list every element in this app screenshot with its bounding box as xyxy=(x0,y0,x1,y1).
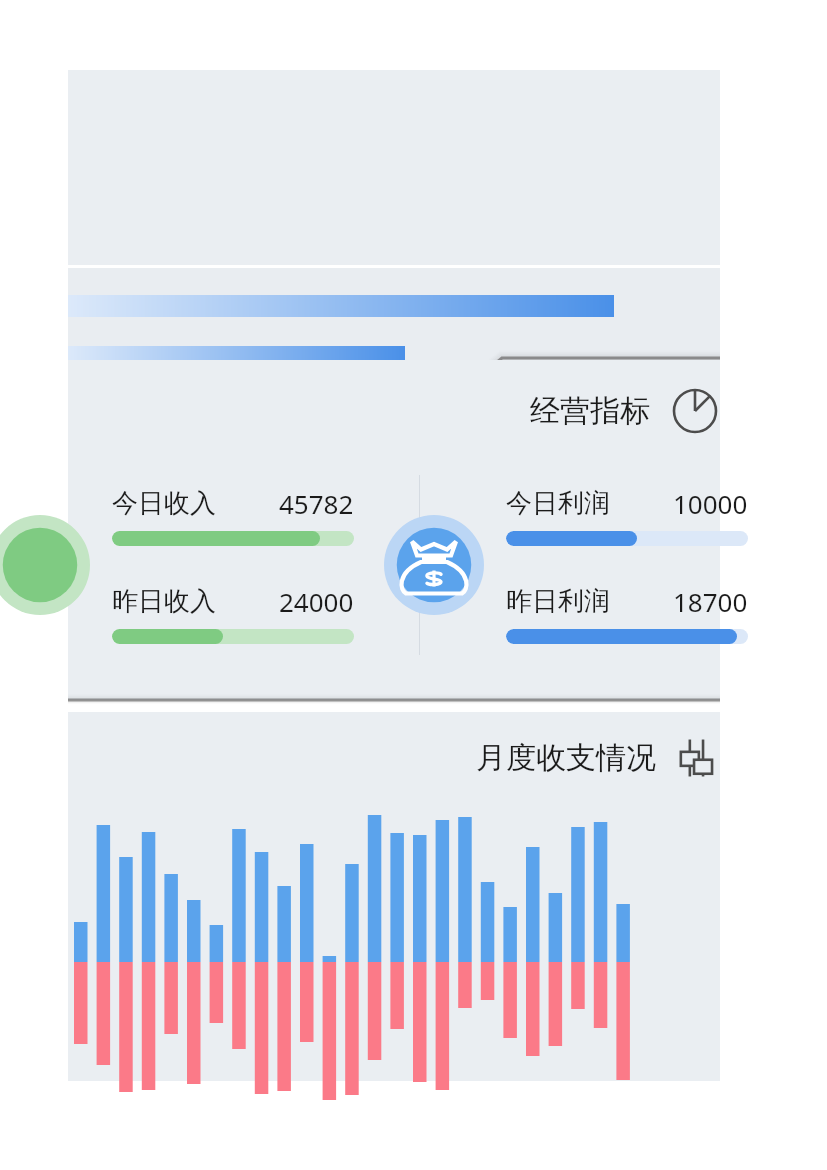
other: 设置 xyxy=(674,736,718,780)
staticText: 昨日收入 xyxy=(112,585,216,618)
staticText: 昨日利润 xyxy=(506,585,610,618)
staticText: 经营指标 xyxy=(530,392,650,430)
button[interactable]: 今日收入 xyxy=(0,486,354,644)
staticText: 今日利润 xyxy=(506,487,610,520)
button[interactable]: 今日利润 xyxy=(384,486,748,644)
staticText: 月度收支情况 xyxy=(476,739,656,777)
other: 经营指标 xyxy=(672,388,718,434)
staticText: 10000 xyxy=(673,486,748,521)
staticText: 24000 xyxy=(279,584,354,619)
staticText: 45782 xyxy=(279,486,354,521)
button[interactable]: 经营指标 xyxy=(530,388,718,434)
button[interactable]: 月度收支情况 xyxy=(476,736,718,780)
staticText: 今日收入 xyxy=(112,487,216,520)
staticText: 18700 xyxy=(673,584,748,619)
